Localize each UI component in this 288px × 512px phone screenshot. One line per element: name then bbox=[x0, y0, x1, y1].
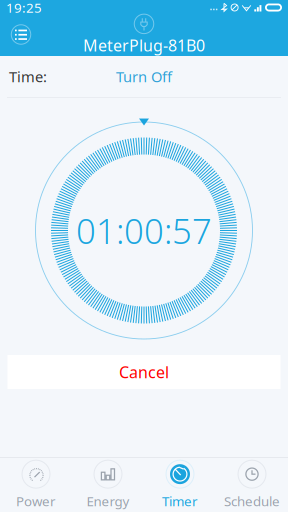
staticText: Time: bbox=[9, 67, 47, 86]
button[interactable]: Timer bbox=[144, 458, 216, 512]
staticText: 19:25 bbox=[6, 0, 42, 16]
staticText: Power bbox=[16, 492, 56, 510]
button[interactable]: Cancel bbox=[7, 355, 280, 389]
staticText: Cancel bbox=[119, 361, 169, 383]
staticText: Energy bbox=[86, 492, 129, 510]
button[interactable]: Power bbox=[0, 458, 72, 512]
staticText: Schedule bbox=[224, 492, 280, 510]
staticText: 01:00:57 bbox=[76, 207, 212, 253]
button[interactable]: Menu bbox=[5, 18, 37, 50]
button[interactable]: Turn Off bbox=[84, 59, 204, 93]
staticText: MeterPlug-81B0 bbox=[83, 35, 205, 56]
staticText: Turn Off bbox=[116, 67, 172, 86]
staticText: Timer bbox=[162, 492, 198, 510]
button[interactable]: Schedule bbox=[216, 458, 288, 512]
button[interactable]: Energy bbox=[72, 458, 144, 512]
